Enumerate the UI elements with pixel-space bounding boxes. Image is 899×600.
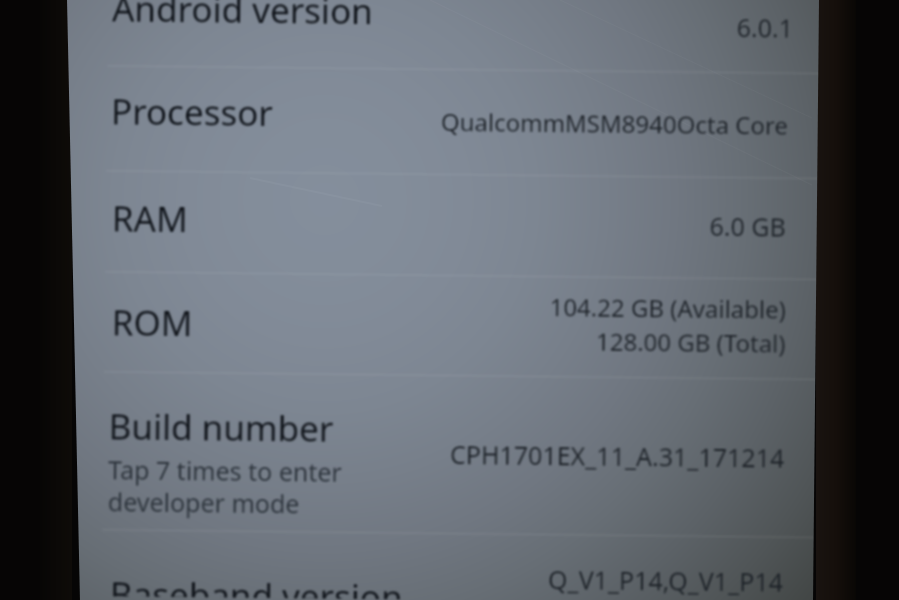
- staticText: RAM: [112, 194, 188, 243]
- staticText: Tap 7 times to enter: [108, 452, 342, 489]
- staticText: 104.22 GB (Available): [549, 290, 786, 326]
- staticText: 128.00 GB (Total): [595, 325, 786, 360]
- button[interactable]: Processor: [111, 85, 273, 139]
- button[interactable]: ROM: [111, 296, 193, 349]
- staticText: Processor: [111, 87, 273, 137]
- staticText: ROM: [111, 298, 193, 347]
- staticText: Build number: [108, 402, 334, 453]
- button[interactable]: Baseband version: [109, 568, 403, 600]
- staticText: 6.0 GB: [709, 209, 786, 244]
- button[interactable]: developer mode: [107, 475, 300, 529]
- button[interactable]: Build number: [108, 400, 334, 455]
- staticText: Q_V1_P14,Q_V1_P14: [548, 562, 783, 599]
- staticText: QualcommMSM8940Octa Core: [440, 105, 788, 142]
- button[interactable]: Android version: [112, 0, 373, 37]
- button[interactable]: RAM: [112, 192, 188, 245]
- staticText: Baseband version: [109, 570, 403, 600]
- staticText: 6.0.1: [736, 10, 793, 45]
- button[interactable]: Tap 7 times to enter: [108, 443, 342, 498]
- staticText: developer mode: [108, 484, 300, 520]
- staticText: CPH1701EX_11_A.31_171214: [449, 437, 784, 475]
- staticText: Android version: [112, 0, 373, 35]
